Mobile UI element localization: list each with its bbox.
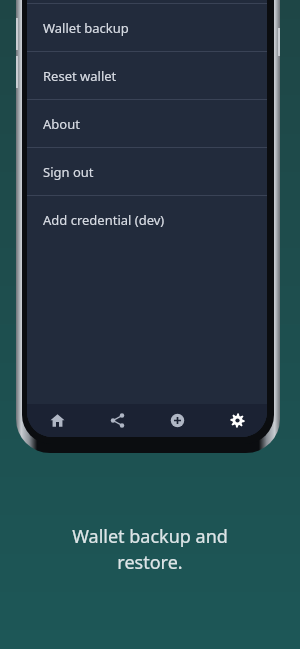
- button[interactable]: Share: [87, 404, 147, 437]
- button[interactable]: About: [27, 99, 267, 147]
- button[interactable]: Wallet backup: [27, 3, 267, 51]
- button[interactable]: Add credential (dev): [27, 195, 267, 243]
- staticText: Wallet backup: [43, 19, 129, 37]
- staticText: Sign out: [43, 163, 94, 181]
- button[interactable]: Settings: [207, 404, 267, 437]
- staticText: About: [43, 115, 80, 133]
- staticText: Add credential (dev): [43, 211, 165, 229]
- button[interactable]: Add: [147, 404, 207, 437]
- staticText: Wallet backup and restore.: [0, 524, 300, 575]
- staticText: Reset wallet: [43, 67, 117, 85]
- button[interactable]: Home: [27, 404, 87, 437]
- button[interactable]: Sign out: [27, 147, 267, 195]
- button[interactable]: Reset wallet: [27, 51, 267, 99]
